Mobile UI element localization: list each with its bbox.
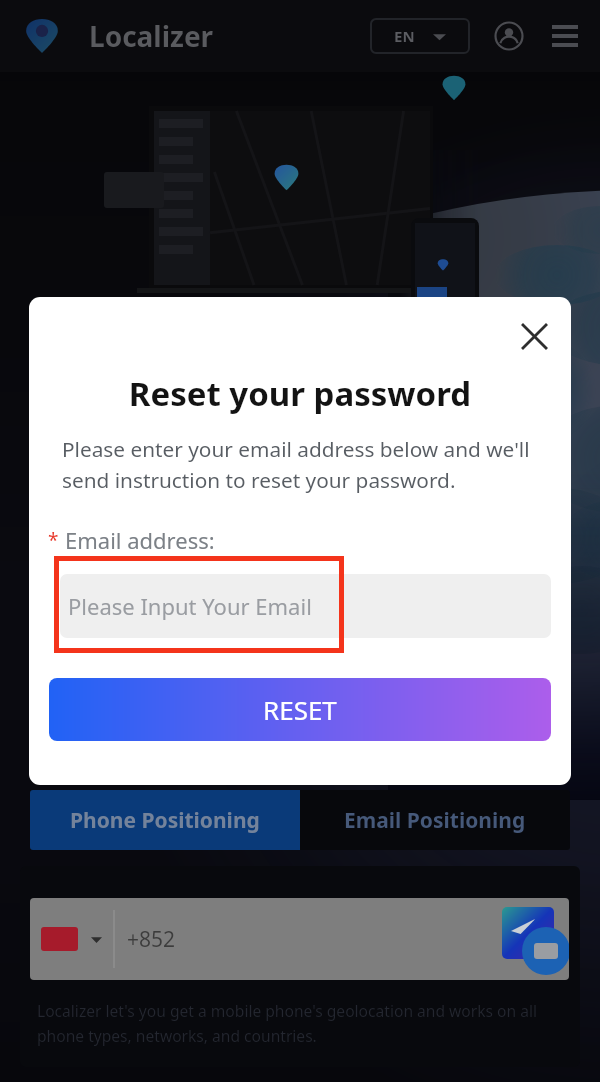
staticText: Localizer bbox=[89, 17, 214, 55]
button[interactable]: EN bbox=[370, 18, 470, 54]
button[interactable]: Account bbox=[490, 17, 528, 55]
button[interactable]: Phone Positioning bbox=[30, 790, 300, 850]
button[interactable]: +852 bbox=[30, 898, 569, 980]
staticText: RESET bbox=[263, 692, 337, 727]
button[interactable]: Menu bbox=[546, 17, 584, 55]
button[interactable]: Email Positioning bbox=[300, 790, 570, 850]
staticText: Phone Positioning bbox=[70, 806, 260, 835]
button[interactable]: Please Input Your Email bbox=[60, 574, 551, 638]
staticText: Reset your password bbox=[29, 371, 571, 416]
staticText: Email Positioning bbox=[344, 806, 526, 835]
staticText: Please Input Your Email bbox=[68, 591, 312, 621]
staticText: Email address: bbox=[65, 525, 215, 555]
staticText: Localizer let's you get a mobile phone's… bbox=[37, 1000, 537, 1046]
staticText: * bbox=[48, 527, 59, 553]
staticText: Please enter your email address below an… bbox=[62, 435, 571, 494]
button[interactable]: RESET bbox=[49, 678, 551, 741]
staticText: +852 bbox=[127, 925, 176, 954]
button[interactable]: Close bbox=[514, 316, 554, 356]
staticText: EN bbox=[394, 26, 415, 46]
